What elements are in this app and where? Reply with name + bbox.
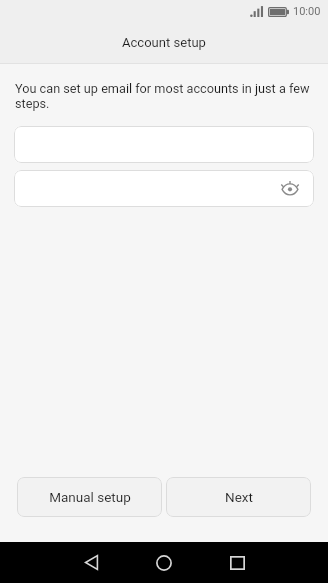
staticText: Next — [225, 489, 253, 505]
staticText: 10:00 — [293, 5, 321, 18]
staticText: Manual setup — [49, 489, 131, 505]
button[interactable]: Recents — [215, 542, 259, 583]
button[interactable]: Show password — [14, 170, 314, 207]
staticText: Account setup — [122, 35, 206, 50]
button[interactable] — [14, 126, 314, 163]
button[interactable]: Home — [142, 542, 186, 583]
button[interactable]: Back — [69, 542, 113, 583]
staticText: You can set up email for most accounts i… — [15, 81, 316, 111]
button[interactable]: Next — [166, 477, 311, 517]
button[interactable]: Show password — [279, 178, 301, 200]
button[interactable]: Manual setup — [17, 477, 162, 517]
